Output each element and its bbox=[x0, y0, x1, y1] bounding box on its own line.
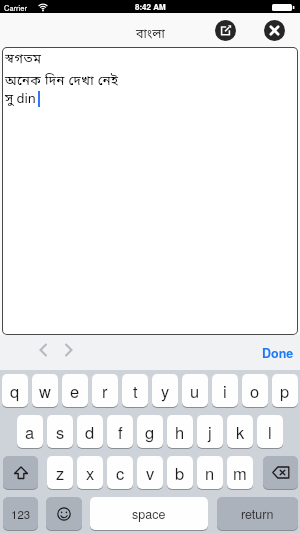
button[interactable]: b bbox=[167, 456, 193, 489]
button[interactable] bbox=[61, 340, 81, 364]
button[interactable] bbox=[33, 340, 53, 364]
button[interactable]: c bbox=[107, 456, 133, 489]
staticText: t bbox=[133, 379, 138, 403]
staticText: a bbox=[25, 420, 35, 444]
staticText: v bbox=[146, 461, 155, 485]
button[interactable]: p bbox=[272, 374, 298, 407]
staticText: d bbox=[85, 420, 95, 444]
staticText: e bbox=[70, 379, 80, 403]
button[interactable]: return bbox=[217, 497, 298, 530]
button[interactable] bbox=[46, 497, 82, 530]
staticText: Carrier bbox=[4, 2, 27, 13]
staticText: k bbox=[236, 420, 245, 444]
staticText: l bbox=[268, 420, 272, 444]
staticText: f bbox=[118, 420, 123, 444]
button[interactable]: q bbox=[2, 374, 28, 407]
staticText: অনেক দিন দেখা নেই bbox=[5, 73, 119, 90]
staticText: m bbox=[233, 461, 247, 485]
button[interactable] bbox=[3, 456, 38, 489]
staticText: Done bbox=[262, 344, 294, 362]
staticText: x bbox=[86, 461, 95, 485]
button[interactable]: h bbox=[167, 415, 193, 448]
button[interactable]: o bbox=[242, 374, 268, 407]
button[interactable]: k bbox=[227, 415, 253, 448]
button[interactable]: e bbox=[62, 374, 88, 407]
staticText: j bbox=[208, 420, 212, 444]
staticText: p bbox=[280, 379, 290, 403]
staticText: q bbox=[10, 379, 20, 403]
button[interactable]: r bbox=[92, 374, 118, 407]
button[interactable]: g bbox=[137, 415, 163, 448]
staticText: g bbox=[145, 420, 155, 444]
staticText: return bbox=[241, 505, 274, 523]
staticText: সু din bbox=[5, 91, 36, 108]
button[interactable] bbox=[215, 20, 236, 41]
staticText: s bbox=[56, 420, 65, 444]
button[interactable] bbox=[264, 20, 285, 41]
staticText: w bbox=[39, 379, 51, 403]
staticText: h bbox=[175, 420, 185, 444]
button[interactable]: 123 bbox=[3, 497, 38, 530]
button[interactable]: x bbox=[77, 456, 103, 489]
button[interactable]: u bbox=[182, 374, 208, 407]
button[interactable]: z bbox=[47, 456, 73, 489]
staticText: n bbox=[205, 461, 215, 485]
button[interactable]: n bbox=[197, 456, 223, 489]
button[interactable] bbox=[263, 456, 298, 489]
staticText: o bbox=[250, 379, 260, 403]
staticText: 123 bbox=[11, 506, 31, 522]
staticText: space bbox=[132, 505, 166, 523]
staticText: z bbox=[56, 461, 65, 485]
staticText: i bbox=[223, 379, 227, 403]
button[interactable]: Done bbox=[255, 340, 300, 365]
staticText: b bbox=[175, 461, 185, 485]
button[interactable]: y bbox=[152, 374, 178, 407]
button[interactable]: v bbox=[137, 456, 163, 489]
button[interactable]: t bbox=[122, 374, 148, 407]
button[interactable]: s bbox=[47, 415, 73, 448]
staticText: r bbox=[102, 379, 108, 403]
staticText: c bbox=[116, 461, 125, 485]
staticText: u bbox=[190, 379, 200, 403]
staticText: স্বগতম bbox=[5, 51, 42, 68]
button[interactable]: m bbox=[227, 456, 253, 489]
button[interactable]: d bbox=[77, 415, 103, 448]
staticText: 8:42 AM bbox=[135, 1, 166, 12]
button[interactable] bbox=[3, 48, 297, 334]
staticText: বাংলা bbox=[136, 27, 165, 44]
button[interactable]: a bbox=[17, 415, 43, 448]
button[interactable]: f bbox=[107, 415, 133, 448]
button[interactable]: l bbox=[257, 415, 283, 448]
staticText: y bbox=[161, 379, 170, 403]
button[interactable]: space bbox=[90, 497, 208, 530]
button[interactable]: j bbox=[197, 415, 223, 448]
button[interactable]: w bbox=[32, 374, 58, 407]
button[interactable]: i bbox=[212, 374, 238, 407]
